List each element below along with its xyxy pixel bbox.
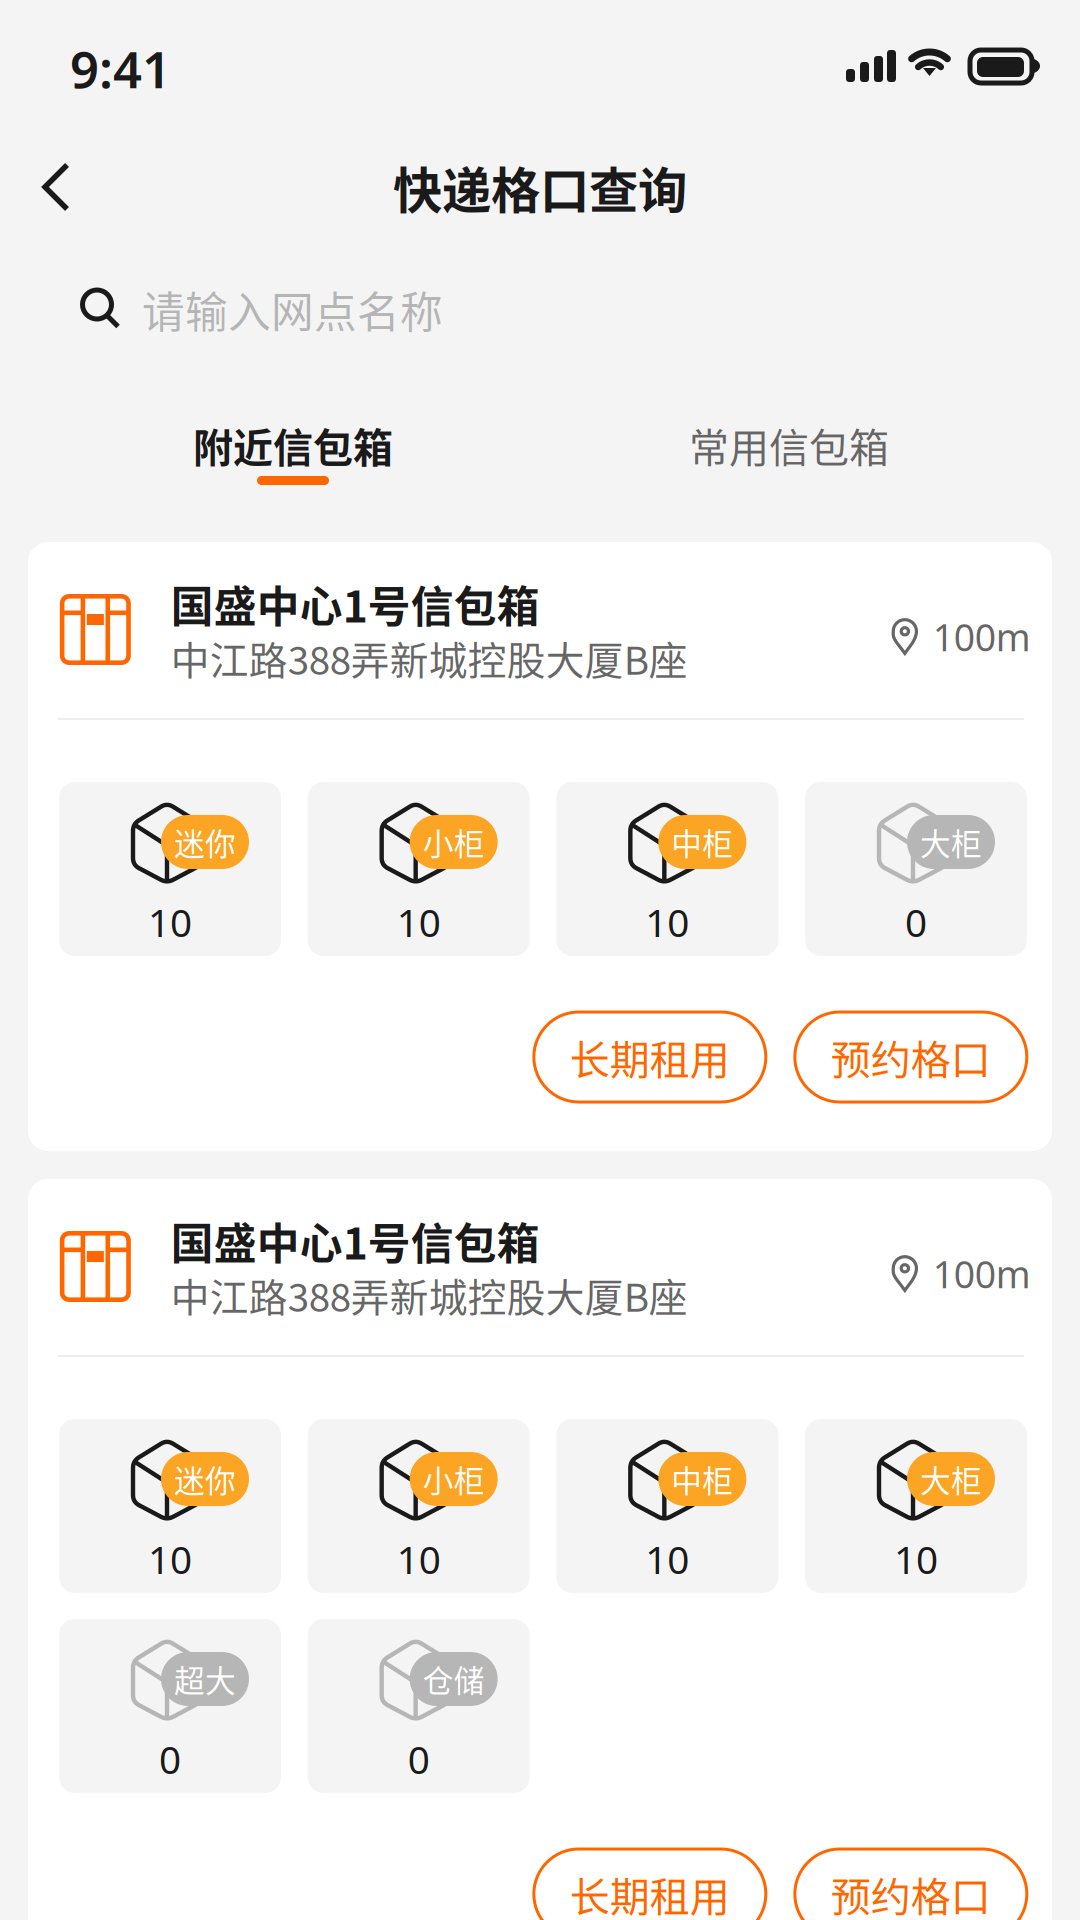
- staticText: 长期租用: [570, 1865, 730, 1920]
- staticText: 中江路388弄新城控股大厦B座: [171, 630, 688, 686]
- staticText: 中江路388弄新城控股大厦B座: [171, 1267, 688, 1323]
- button[interactable]: 迷你: [59, 782, 281, 956]
- staticText: 国盛中心1号信包箱: [171, 573, 540, 635]
- staticText: 10: [148, 1533, 192, 1585]
- staticText: 0: [408, 1733, 430, 1785]
- staticText: 0: [905, 896, 927, 948]
- staticText: 中柜: [671, 1457, 733, 1501]
- staticText: 国盛中心1号信包箱: [171, 1210, 540, 1272]
- button[interactable]: 请输入网点名称: [0, 242, 1080, 377]
- staticText: 大柜: [920, 1457, 982, 1501]
- button[interactable]: 大柜: [805, 1419, 1027, 1593]
- button[interactable]: 附近信包箱: [108, 377, 478, 457]
- button[interactable]: 返回: [42, 132, 124, 242]
- button[interactable]: 迷你: [59, 1419, 281, 1593]
- staticText: 10: [645, 1533, 689, 1585]
- staticText: 大柜: [920, 820, 982, 864]
- button[interactable]: 中柜: [556, 1419, 778, 1593]
- staticText: 预约格口: [831, 1028, 991, 1086]
- staticText: 10: [397, 896, 441, 948]
- staticText: 小柜: [423, 1457, 485, 1501]
- button[interactable]: 预约格口: [795, 1012, 1027, 1102]
- staticText: 超大: [174, 1657, 236, 1701]
- staticText: 常用信包箱: [689, 416, 889, 474]
- staticText: 附近信包箱: [193, 416, 393, 474]
- staticText: 仓储: [423, 1657, 485, 1701]
- staticText: 9:41: [70, 35, 171, 102]
- button[interactable]: 中柜: [556, 782, 778, 956]
- button[interactable]: 大柜: [805, 782, 1027, 956]
- staticText: 100m: [933, 1249, 1031, 1299]
- staticText: 中柜: [671, 820, 733, 864]
- staticText: 小柜: [423, 820, 485, 864]
- staticText: 0: [159, 1733, 181, 1785]
- staticText: 长期租用: [570, 1028, 730, 1086]
- button[interactable]: 长期租用: [534, 1849, 766, 1920]
- button[interactable]: 小柜: [308, 1419, 530, 1593]
- button[interactable]: 超大: [59, 1619, 281, 1793]
- staticText: 10: [645, 896, 689, 948]
- staticText: 迷你: [174, 820, 236, 864]
- button[interactable]: 长期租用: [534, 1012, 766, 1102]
- button[interactable]: 小柜: [308, 782, 530, 956]
- staticText: 100m: [933, 612, 1031, 662]
- staticText: 10: [894, 1533, 938, 1585]
- staticText: 迷你: [174, 1457, 236, 1501]
- staticText: 10: [397, 1533, 441, 1585]
- button[interactable]: 仓储: [308, 1619, 530, 1793]
- staticText: 快递格口查询: [393, 151, 687, 223]
- staticText: 请输入网点名称: [142, 279, 443, 340]
- staticText: 预约格口: [831, 1865, 991, 1920]
- button[interactable]: 预约格口: [795, 1849, 1027, 1920]
- staticText: 10: [148, 896, 192, 948]
- button[interactable]: 常用信包箱: [604, 377, 974, 457]
